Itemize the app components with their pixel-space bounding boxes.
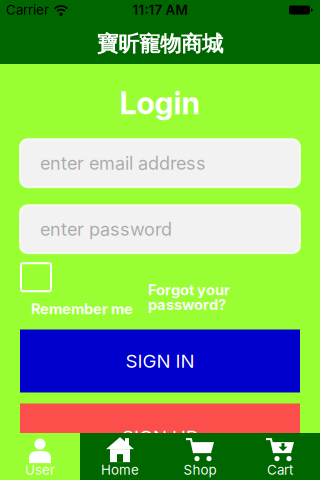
button[interactable]: enter password: [20, 205, 300, 253]
staticText: SIGN IN: [125, 350, 194, 372]
button[interactable]: Home: [80, 433, 160, 480]
staticText: Remember me: [31, 300, 133, 317]
button[interactable]: SIGN UP: [20, 403, 300, 466]
button[interactable]: User: [0, 433, 80, 480]
staticText: Forgot your: [148, 281, 230, 298]
button[interactable]: Forgot your: [148, 281, 230, 313]
staticText: 11:17 AM: [132, 2, 187, 18]
button[interactable]: Remember me checkbox: [21, 263, 51, 291]
staticText: password?: [148, 296, 226, 313]
staticText: SIGN UP: [122, 426, 198, 448]
staticText: Shop: [183, 462, 216, 478]
staticText: User: [25, 462, 55, 478]
staticText: enter email address: [40, 152, 206, 174]
button[interactable]: Shop: [160, 433, 240, 480]
staticText: enter password: [40, 218, 172, 240]
staticText: Login: [119, 85, 200, 121]
button[interactable]: SIGN IN: [20, 329, 300, 392]
button[interactable]: enter email address: [20, 139, 300, 187]
staticText: Carrier: [6, 2, 49, 18]
staticText: Cart: [267, 462, 293, 478]
staticText: Home: [101, 462, 139, 478]
staticText: 寶昕寵物商城: [97, 31, 223, 57]
button[interactable]: Cart: [240, 433, 320, 480]
